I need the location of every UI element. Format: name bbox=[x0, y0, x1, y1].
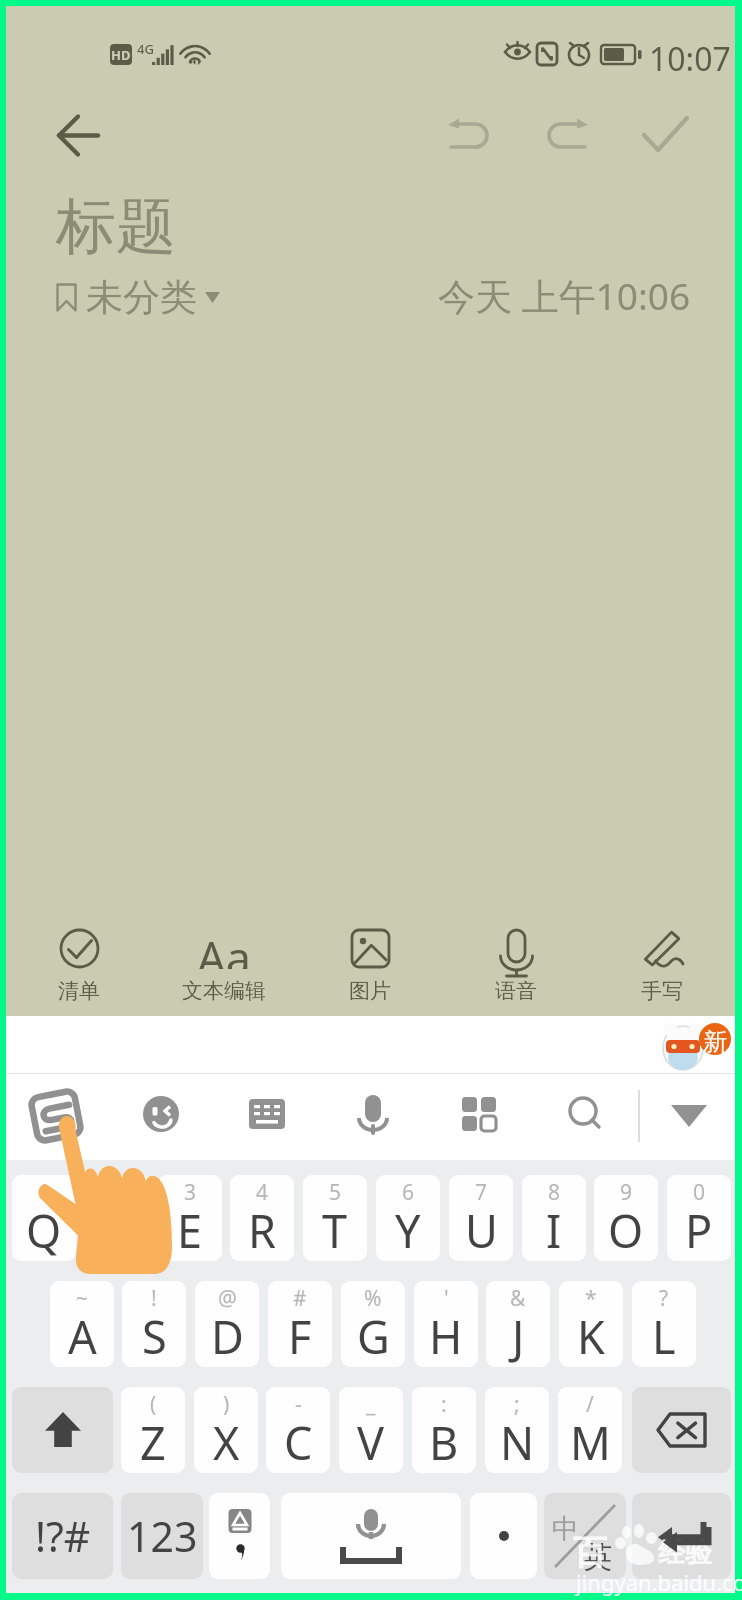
button[interactable]: ' bbox=[414, 1281, 478, 1367]
button[interactable]: 未分类 bbox=[56, 274, 220, 321]
button[interactable]: 0 bbox=[667, 1175, 731, 1261]
staticText: X bbox=[213, 1412, 240, 1473]
staticText: R bbox=[248, 1200, 276, 1261]
button[interactable]: 手写 bbox=[589, 911, 735, 1016]
button[interactable]: !?# bbox=[12, 1493, 113, 1579]
button[interactable]: % bbox=[341, 1281, 405, 1367]
button[interactable]: Voice input bbox=[341, 1082, 405, 1146]
staticText: Aa bbox=[197, 927, 252, 969]
staticText: E bbox=[177, 1200, 203, 1261]
button[interactable]: & bbox=[486, 1281, 550, 1367]
staticText: N bbox=[500, 1412, 535, 1473]
button[interactable]: 5 bbox=[303, 1175, 367, 1261]
button[interactable]: 3 bbox=[158, 1175, 222, 1261]
staticText: J bbox=[512, 1306, 525, 1367]
staticText: H bbox=[429, 1306, 463, 1367]
button[interactable]: period bbox=[470, 1493, 537, 1579]
button[interactable]: ~ bbox=[50, 1281, 114, 1367]
button[interactable]: * bbox=[559, 1281, 623, 1367]
staticText: 新 bbox=[703, 1027, 727, 1057]
button[interactable]: 1 bbox=[12, 1175, 76, 1261]
button[interactable]: 9 bbox=[594, 1175, 658, 1261]
button[interactable]: shift bbox=[12, 1387, 113, 1473]
button[interactable]: # bbox=[268, 1281, 332, 1367]
staticText: ' bbox=[444, 1284, 449, 1313]
staticText: 123 bbox=[127, 1508, 198, 1564]
staticText: V bbox=[357, 1412, 385, 1473]
staticText: !?# bbox=[35, 1508, 91, 1564]
button[interactable]: @ bbox=[195, 1281, 259, 1367]
staticText: # bbox=[293, 1284, 307, 1313]
button[interactable]: / bbox=[558, 1387, 622, 1473]
button[interactable]: Emoji bbox=[129, 1082, 193, 1146]
button[interactable]: - bbox=[266, 1387, 330, 1473]
button[interactable]: : bbox=[412, 1387, 476, 1473]
button[interactable]: 123 bbox=[121, 1493, 203, 1579]
staticText: ( bbox=[150, 1390, 157, 1419]
staticText: _ bbox=[366, 1390, 376, 1419]
button[interactable]: comma bbox=[209, 1493, 270, 1579]
staticText: Y bbox=[395, 1200, 421, 1261]
staticText: : bbox=[441, 1390, 447, 1419]
button[interactable]: Hide keyboard bbox=[657, 1084, 721, 1148]
button[interactable]: 清单 bbox=[6, 911, 151, 1016]
button[interactable]: Redo bbox=[528, 94, 607, 173]
button[interactable]: enter bbox=[632, 1493, 731, 1579]
staticText: 6 bbox=[402, 1178, 415, 1207]
button[interactable]: More bbox=[447, 1082, 511, 1146]
staticText: 文本编辑 bbox=[182, 978, 266, 1004]
staticText: B bbox=[429, 1412, 459, 1473]
button[interactable]: ( bbox=[121, 1387, 185, 1473]
staticText: ) bbox=[223, 1390, 230, 1419]
staticText: G bbox=[357, 1306, 390, 1367]
button[interactable]: Sogou input bbox=[24, 1084, 88, 1148]
staticText: 手写 bbox=[641, 978, 683, 1004]
staticText: 今天 上午10:06 bbox=[438, 270, 691, 321]
staticText: 清单 bbox=[58, 978, 100, 1004]
staticText: jingyan.baidu.com bbox=[576, 1567, 742, 1597]
button[interactable]: 7 bbox=[449, 1175, 513, 1261]
button[interactable]: space bbox=[281, 1493, 461, 1579]
button[interactable]: 图片 bbox=[297, 911, 443, 1016]
button[interactable]: Undo bbox=[429, 94, 508, 173]
staticText: 语音 bbox=[495, 978, 537, 1004]
staticText: - bbox=[295, 1390, 302, 1419]
button[interactable]: backspace bbox=[632, 1387, 731, 1473]
staticText: Z bbox=[140, 1412, 166, 1473]
button[interactable]: ? bbox=[632, 1281, 696, 1367]
button[interactable]: Keyboard layout bbox=[235, 1082, 299, 1146]
button[interactable]: Aa bbox=[151, 911, 297, 1016]
staticText: C bbox=[284, 1412, 313, 1473]
staticText: / bbox=[586, 1390, 594, 1419]
button[interactable]: Back bbox=[38, 95, 118, 175]
staticText: 5 bbox=[329, 1178, 342, 1207]
staticText: 标题 bbox=[56, 189, 176, 265]
button[interactable]: ; bbox=[485, 1387, 549, 1473]
staticText: % bbox=[364, 1284, 382, 1313]
staticText: 1 bbox=[38, 1178, 51, 1207]
staticText: 7 bbox=[475, 1178, 488, 1207]
staticText: 英 bbox=[583, 1539, 612, 1576]
staticText: @ bbox=[218, 1284, 237, 1313]
staticText: 未分类 bbox=[86, 274, 197, 321]
button[interactable]: 语音 bbox=[443, 911, 589, 1016]
button[interactable]: 2 bbox=[85, 1175, 149, 1261]
button[interactable]: Done bbox=[625, 94, 705, 174]
button[interactable]: 8 bbox=[522, 1175, 586, 1261]
button[interactable]: Search bbox=[553, 1082, 617, 1146]
staticText: U bbox=[465, 1200, 498, 1261]
staticText: & bbox=[510, 1284, 526, 1313]
staticText: S bbox=[142, 1306, 167, 1367]
staticText: P bbox=[685, 1200, 713, 1261]
staticText: 经验 bbox=[658, 1536, 712, 1570]
button[interactable]: ! bbox=[122, 1281, 186, 1367]
button[interactable]: lang bbox=[544, 1493, 626, 1579]
button[interactable]: _ bbox=[339, 1387, 403, 1473]
staticText: F bbox=[288, 1306, 312, 1367]
button[interactable]: 6 bbox=[376, 1175, 440, 1261]
button[interactable]: ) bbox=[194, 1387, 258, 1473]
button[interactable]: 4 bbox=[230, 1175, 294, 1261]
staticText: L bbox=[652, 1306, 676, 1367]
staticText: Q bbox=[26, 1200, 62, 1261]
